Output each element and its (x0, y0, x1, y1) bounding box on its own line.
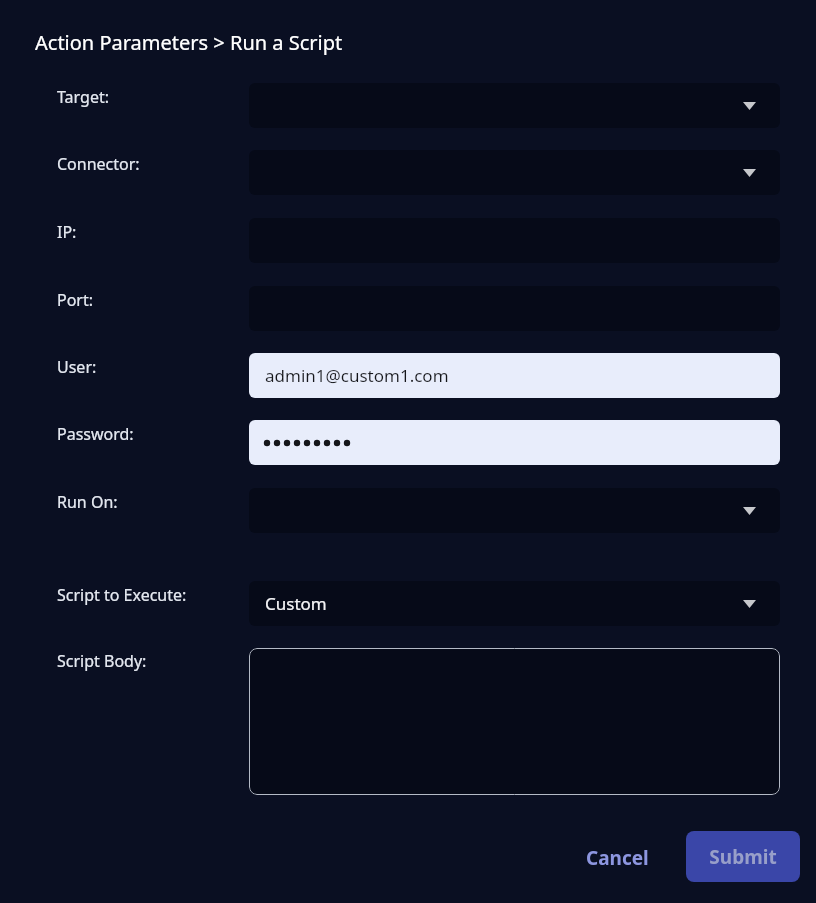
button[interactable]: User: (249, 353, 780, 398)
staticText: Submit (709, 844, 777, 870)
button[interactable]: Cancel (576, 840, 659, 876)
button[interactable]: Script Body (249, 648, 780, 795)
staticText: Custom (265, 592, 327, 615)
staticText: admin1@custom1.com (265, 364, 449, 387)
staticText: Run On: (57, 491, 118, 513)
button[interactable]: Connector: (249, 150, 780, 195)
staticText: Cancel (586, 845, 649, 871)
staticText: User: (57, 356, 97, 378)
staticText: Password: (57, 423, 134, 445)
staticText: IP: (57, 221, 77, 243)
staticText: Script to Execute: (57, 584, 187, 606)
staticText: Script Body: (57, 650, 147, 672)
staticText: Connector: (57, 153, 140, 175)
button[interactable]: Password: (249, 420, 780, 465)
button[interactable]: Submit (686, 831, 800, 882)
staticText: Action Parameters > Run a Script (35, 29, 343, 56)
button[interactable]: Script to Execute: (249, 581, 780, 626)
staticText: Port: (57, 289, 94, 311)
button[interactable]: Run On: (249, 488, 780, 533)
button[interactable]: Target: (249, 83, 780, 128)
staticText: Target: (57, 86, 109, 108)
